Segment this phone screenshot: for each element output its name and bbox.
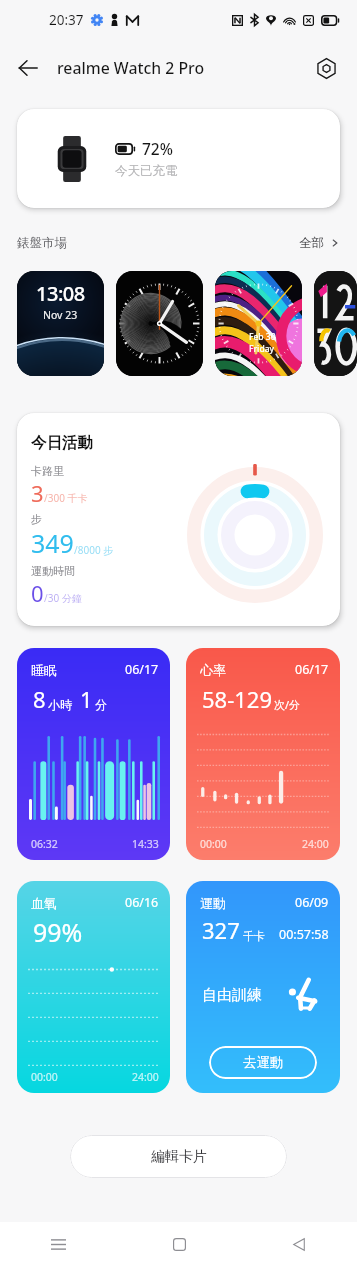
- staticText: 24:00: [132, 1070, 159, 1084]
- staticText: 8: [33, 684, 46, 714]
- button[interactable]: 72%: [17, 109, 340, 208]
- staticText: realme Watch 2 Pro: [57, 57, 205, 79]
- button[interactable]: Watch face 3: [215, 271, 302, 376]
- staticText: /300 千卡: [44, 491, 88, 505]
- button[interactable]: Watch face 1: [17, 271, 104, 376]
- staticText: /30 分鐘: [44, 591, 82, 605]
- staticText: 1: [80, 684, 93, 714]
- staticText: 20:37: [49, 11, 84, 29]
- staticText: 去運動: [243, 1054, 284, 1071]
- staticText: 0: [31, 578, 44, 608]
- staticText: 06/16: [125, 894, 159, 911]
- staticText: 00:00: [31, 1070, 58, 1084]
- button[interactable]: Recent apps: [36, 1222, 80, 1266]
- staticText: 血氧: [31, 895, 57, 911]
- staticText: 3: [31, 478, 44, 508]
- button[interactable]: 心率: [186, 648, 340, 860]
- staticText: 運動時間: [31, 564, 75, 578]
- staticText: 錶盤市場: [17, 235, 67, 251]
- staticText: 小時: [48, 697, 72, 712]
- staticText: 卡路里: [31, 464, 64, 478]
- staticText: /8000 步: [74, 543, 114, 557]
- button[interactable]: Watch face 4: [314, 271, 357, 376]
- button[interactable]: 血氧: [17, 881, 170, 1093]
- staticText: 分: [95, 697, 107, 712]
- button[interactable]: Watch face 2: [116, 271, 203, 376]
- button[interactable]: 去運動: [209, 1046, 317, 1079]
- button[interactable]: 編輯卡片: [70, 1135, 287, 1178]
- staticText: 00:57:58: [279, 926, 329, 943]
- staticText: 睡眠: [31, 662, 57, 678]
- staticText: 06/09: [295, 894, 329, 911]
- button[interactable]: 今日活動: [17, 413, 340, 626]
- staticText: 千卡: [243, 929, 265, 943]
- staticText: 運動: [200, 895, 226, 911]
- staticText: 58-129: [202, 684, 273, 714]
- button[interactable]: Settings: [307, 49, 345, 87]
- staticText: 06/17: [295, 661, 329, 678]
- button[interactable]: Back: [277, 1222, 321, 1266]
- staticText: 心率: [200, 662, 226, 678]
- button[interactable]: Home: [157, 1222, 201, 1266]
- staticText: 步: [31, 512, 42, 526]
- staticText: 13:08: [36, 280, 85, 307]
- button[interactable]: 運動: [186, 881, 340, 1093]
- staticText: 次/分: [274, 697, 301, 712]
- staticText: 今日活動: [31, 433, 93, 453]
- staticText: Friday: [249, 343, 274, 355]
- staticText: 14:33: [132, 837, 159, 851]
- staticText: 06:32: [31, 837, 58, 851]
- staticText: 24:00: [302, 837, 329, 851]
- staticText: Nov 23: [43, 308, 78, 322]
- button[interactable]: 錶盤市場: [17, 231, 340, 255]
- staticText: 今天已充電: [115, 163, 178, 179]
- staticText: 全部: [299, 235, 324, 251]
- staticText: 06/17: [125, 661, 159, 678]
- button[interactable]: 睡眠: [17, 648, 170, 860]
- staticText: 349: [31, 526, 74, 560]
- staticText: 327: [202, 915, 240, 945]
- staticText: Feb 30: [249, 331, 276, 343]
- staticText: 72%: [142, 138, 173, 159]
- staticText: 編輯卡片: [151, 1148, 207, 1166]
- staticText: 99%: [33, 915, 83, 949]
- staticText: 自由訓練: [202, 986, 262, 1005]
- button[interactable]: Back: [9, 49, 47, 87]
- staticText: 00:00: [200, 837, 227, 851]
